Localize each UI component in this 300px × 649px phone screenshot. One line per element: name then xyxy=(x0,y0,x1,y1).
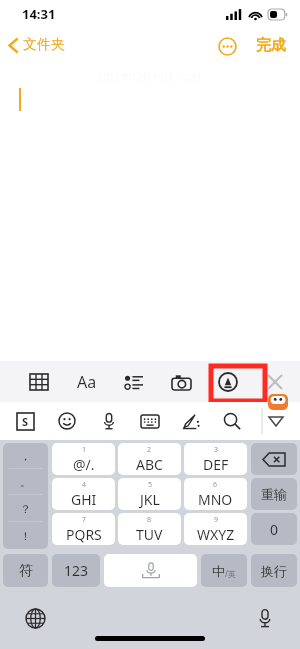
button[interactable]: Camera xyxy=(164,365,198,399)
staticText: @/. xyxy=(73,455,95,474)
button[interactable]: ？ xyxy=(3,495,48,522)
button[interactable]: Emoji xyxy=(52,406,82,436)
staticText: 。 xyxy=(20,475,31,489)
button[interactable]: Collapse xyxy=(258,402,294,440)
button[interactable]: Keyboard layout xyxy=(135,406,165,436)
button[interactable]: Text format xyxy=(70,365,104,399)
button[interactable]: Sogou input xyxy=(10,406,40,436)
staticText: 中 xyxy=(212,563,225,579)
button[interactable]: ， xyxy=(3,443,48,469)
button[interactable]: 8 xyxy=(118,513,181,545)
staticText: 换行 xyxy=(261,563,287,579)
staticText: 5 xyxy=(148,480,153,490)
staticText: /英 xyxy=(225,568,236,579)
button[interactable]: Markup xyxy=(211,365,245,399)
staticText: TUV xyxy=(136,525,163,544)
button[interactable]: 。 xyxy=(3,469,48,495)
button[interactable]: 0 xyxy=(251,513,297,545)
staticText: ， xyxy=(20,449,31,463)
staticText: 符 xyxy=(19,562,33,580)
button[interactable]: Delete xyxy=(251,443,297,475)
button[interactable]: Dictation xyxy=(250,603,280,633)
staticText: Aa xyxy=(77,371,97,393)
button[interactable]: 3 xyxy=(184,443,247,475)
button[interactable]: 123 xyxy=(52,554,100,587)
staticText: 4 xyxy=(82,480,87,490)
button[interactable]: 7 xyxy=(52,513,115,545)
button[interactable]: 文件夹 xyxy=(0,32,73,58)
button[interactable]: Handwriting xyxy=(176,406,206,436)
button[interactable]: 6 xyxy=(184,478,247,510)
button[interactable]: Switch keyboard xyxy=(20,603,50,633)
staticText: 文件夹 xyxy=(23,36,65,54)
staticText: 123 xyxy=(64,561,89,580)
button[interactable]: 5 xyxy=(118,478,181,510)
staticText: 9 xyxy=(214,515,219,525)
button[interactable]: 2 xyxy=(118,443,181,475)
staticText: S xyxy=(22,414,29,429)
staticText: WXYZ xyxy=(197,525,235,544)
button[interactable]: Table xyxy=(22,365,56,399)
staticText: ABC xyxy=(136,455,163,474)
button[interactable]: 4 xyxy=(52,478,115,510)
button[interactable]: 9 xyxy=(184,513,247,545)
button[interactable]: 中 xyxy=(201,554,247,587)
button[interactable]: 1 xyxy=(52,443,115,475)
staticText: 14:31 xyxy=(22,5,56,23)
button[interactable]: 完成 xyxy=(252,32,290,59)
button[interactable]: More options xyxy=(214,33,240,59)
button[interactable]: Voice input xyxy=(94,406,124,436)
button[interactable]: 符 xyxy=(3,554,48,587)
staticText: 8 xyxy=(147,515,152,525)
staticText: 3 xyxy=(214,445,219,455)
staticText: JKL xyxy=(140,490,160,509)
staticText: GHI xyxy=(71,490,97,509)
button[interactable]: ！ xyxy=(3,522,48,549)
staticText: MNO xyxy=(198,490,233,509)
staticText: PQRS xyxy=(66,525,102,544)
staticText: 7 xyxy=(82,515,87,525)
staticText: 1 xyxy=(82,445,87,455)
button[interactable]: Close keyboard xyxy=(258,365,292,399)
staticText: 重输 xyxy=(261,486,287,502)
button[interactable]: 换行 xyxy=(251,554,297,587)
staticText: 完成 xyxy=(256,36,286,55)
staticText: ！ xyxy=(20,529,31,543)
staticText: ？ xyxy=(20,502,31,516)
button[interactable]: 重输 xyxy=(251,478,297,510)
button[interactable]: Checklist xyxy=(117,365,151,399)
staticText: DEF xyxy=(203,455,229,474)
button[interactable]: Space, voice input xyxy=(104,554,197,587)
button[interactable]: Search xyxy=(217,406,247,436)
staticText: 6 xyxy=(213,480,218,490)
staticText: 0 xyxy=(270,520,279,539)
staticText: 2 xyxy=(147,445,152,455)
